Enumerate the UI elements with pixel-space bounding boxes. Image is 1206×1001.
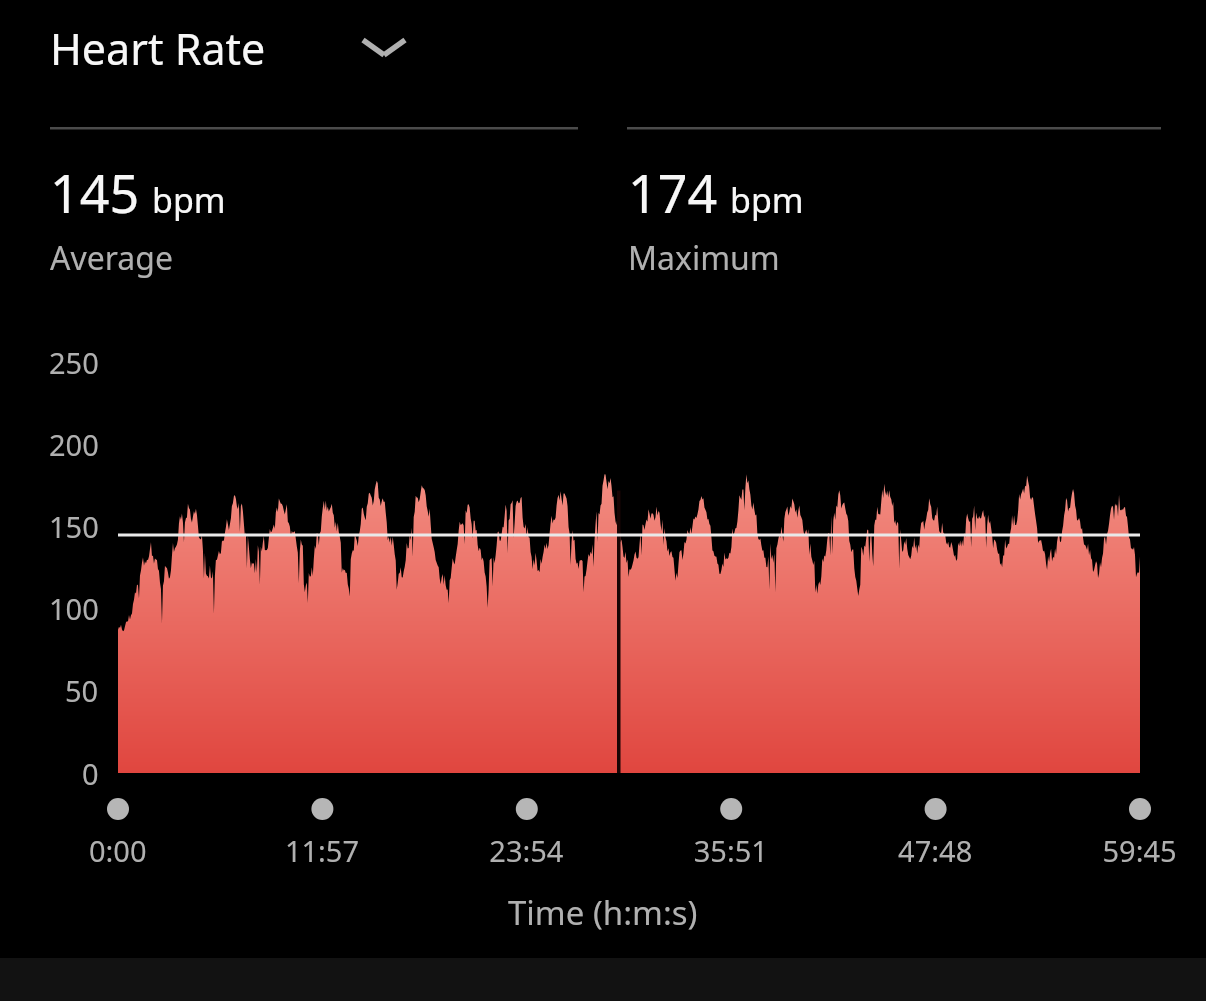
- button[interactable]: Heart Rate, change metric: [40, 8, 420, 78]
